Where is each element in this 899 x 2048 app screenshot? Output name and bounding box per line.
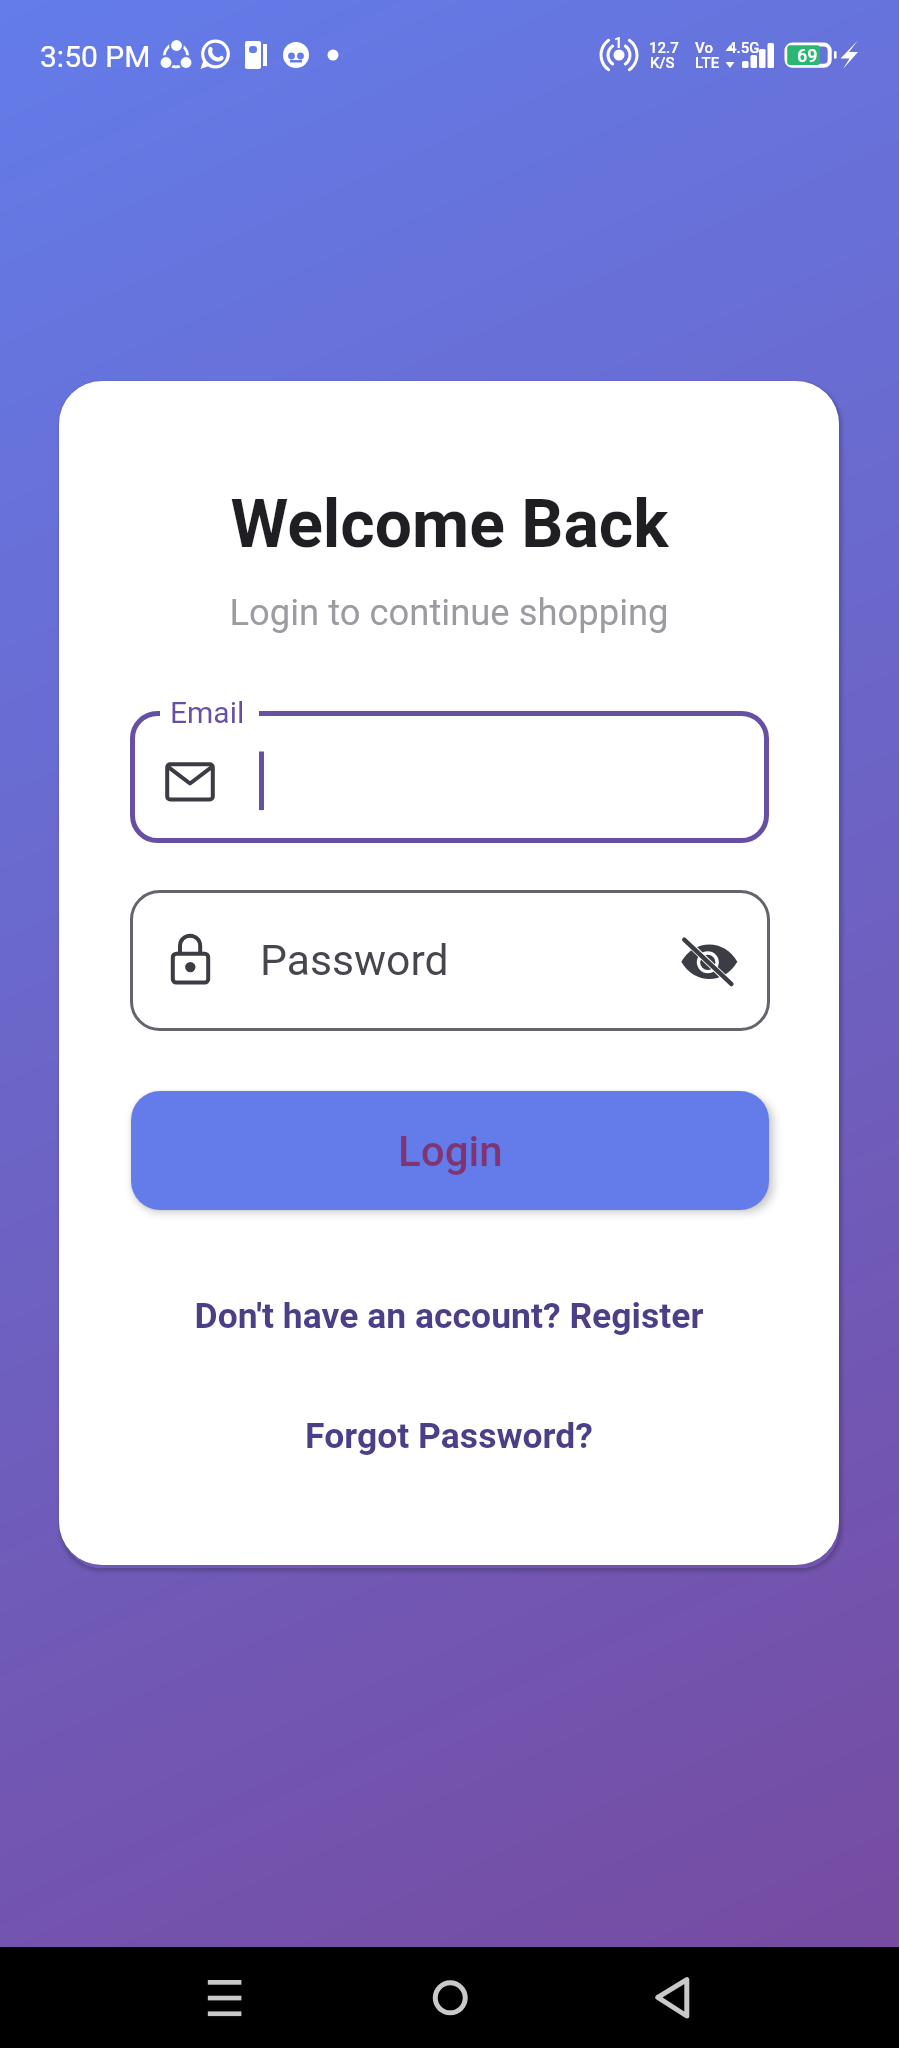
button[interactable]: Home xyxy=(390,1947,510,2048)
staticText: K/S xyxy=(650,54,675,72)
staticText: Vo xyxy=(695,39,713,57)
staticText: 69 xyxy=(797,45,818,66)
button[interactable]: Recent apps xyxy=(165,1947,285,2048)
staticText: 12.7 xyxy=(649,39,679,57)
button[interactable]: Don't have an account? Register xyxy=(159,1281,739,1351)
staticText: Password xyxy=(260,935,449,985)
staticText: Login to continue shopping xyxy=(229,591,669,634)
button[interactable]: Login xyxy=(131,1091,769,1210)
button[interactable]: Email xyxy=(130,711,769,843)
staticText: Email xyxy=(170,695,245,730)
staticText: LTE xyxy=(695,54,720,72)
button[interactable]: Show password xyxy=(679,921,759,1001)
staticText: 1 xyxy=(614,34,623,52)
staticText: Login xyxy=(398,1127,503,1176)
staticText: Welcome Back xyxy=(230,486,669,563)
staticText: 4.5G xyxy=(728,39,760,57)
staticText: 3:50 PM xyxy=(40,39,151,74)
button[interactable]: Password xyxy=(130,890,770,1031)
staticText: Don't have an account? Register xyxy=(159,1295,739,1337)
button[interactable]: Forgot Password? xyxy=(269,1401,629,1471)
button[interactable]: Back xyxy=(612,1947,732,2048)
staticText: Forgot Password? xyxy=(269,1415,629,1457)
